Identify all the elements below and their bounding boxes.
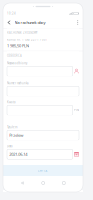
staticText: RACHUNEK ŹRÓDŁOWY bbox=[7, 31, 38, 34]
button[interactable] bbox=[7, 86, 79, 96]
staticText: ODBIORCA bbox=[7, 54, 22, 57]
button[interactable]: ZAPISZ bbox=[3, 165, 83, 176]
staticText: Kwota bbox=[7, 100, 15, 104]
staticText: Konto nr. 1 Oso 2271 / 001 bbox=[7, 38, 48, 41]
staticText: Tytułem bbox=[7, 125, 17, 129]
staticText: Nazwa odbiorcy bbox=[7, 61, 27, 65]
button[interactable]: Choose recipient bbox=[74, 68, 79, 74]
staticText: Data bbox=[7, 144, 12, 148]
button[interactable]: Przelew bbox=[7, 130, 79, 140]
staticText: PLN bbox=[74, 108, 79, 112]
staticText: Numer rachunku bbox=[7, 81, 29, 85]
staticText: Na rachunek obcy bbox=[15, 20, 46, 25]
staticText: 10:24 bbox=[7, 12, 16, 15]
staticText: 1 985,50 PLN bbox=[7, 43, 29, 48]
button[interactable] bbox=[7, 66, 73, 76]
staticText: Przelew bbox=[9, 132, 23, 138]
staticText: 2021-06-14 bbox=[9, 151, 27, 157]
staticText: ZAPISZ bbox=[38, 169, 48, 172]
button[interactable]: Back bbox=[21, 181, 24, 184]
button[interactable]: More options bbox=[77, 20, 79, 25]
button[interactable] bbox=[7, 105, 73, 115]
button[interactable]: Home bbox=[42, 181, 45, 184]
button[interactable]: 2021-06-14 bbox=[7, 149, 73, 159]
button[interactable]: Back bbox=[7, 20, 15, 25]
button[interactable]: Pick date bbox=[74, 151, 79, 157]
